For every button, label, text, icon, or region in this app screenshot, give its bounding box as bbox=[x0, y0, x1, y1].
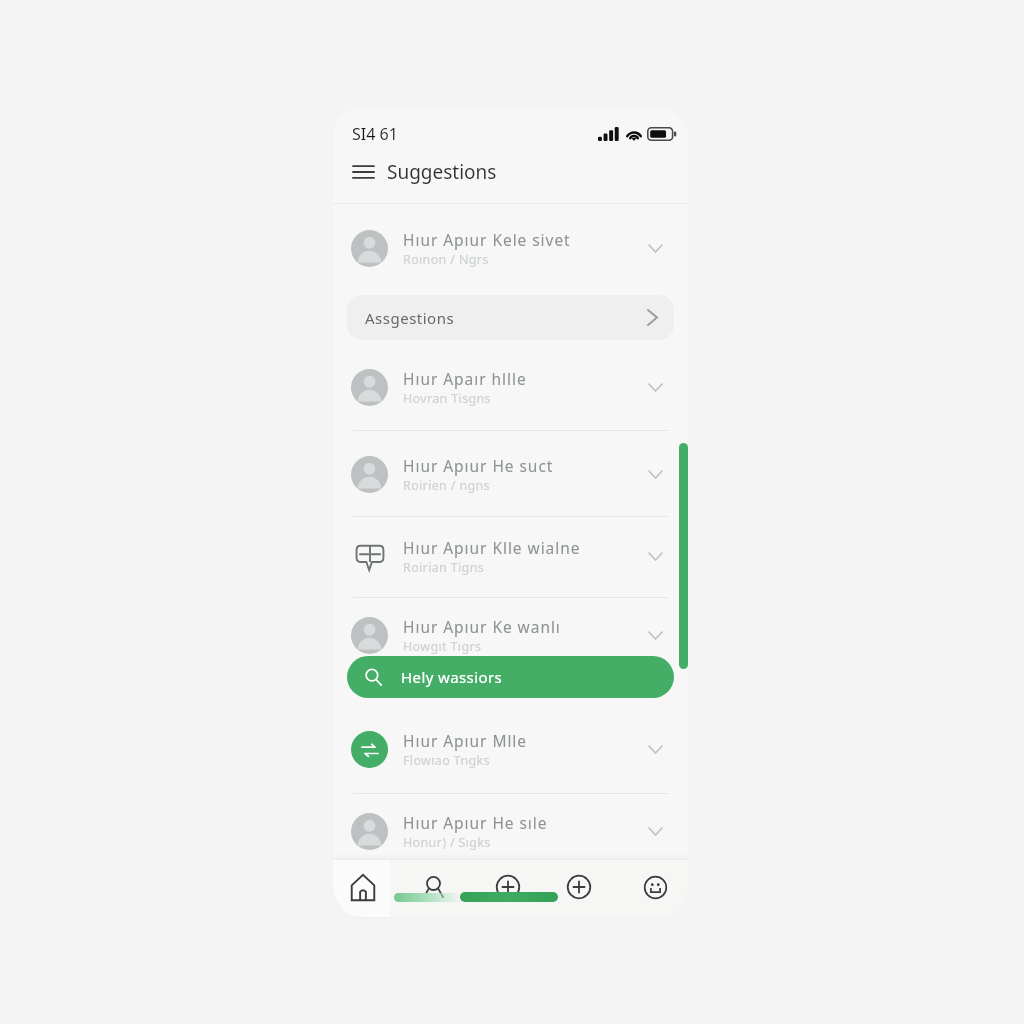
staticText: Assgestions bbox=[365, 308, 455, 328]
button[interactable]: Expand bbox=[642, 543, 668, 569]
staticText: Howgıt Tıgrs bbox=[403, 638, 482, 655]
staticText: Suggestions bbox=[387, 159, 497, 185]
staticText: Hely wassiors bbox=[401, 667, 503, 687]
staticText: Hıur Apaır hllle bbox=[403, 368, 527, 389]
staticText: Hıur Apıur He sıle bbox=[403, 812, 548, 833]
button[interactable]: Hıur Apaır hllle bbox=[333, 361, 688, 413]
staticText: Flowıao Tngks bbox=[403, 752, 490, 769]
staticText: Hıur Apıur Klle wialne bbox=[403, 537, 581, 558]
button[interactable]: Hıur Apıur He suct bbox=[333, 448, 688, 500]
button[interactable]: Add bbox=[484, 863, 532, 911]
staticText: Roınon / Ngrs bbox=[403, 251, 489, 268]
staticText: Hıur Apıur Kele sivet bbox=[403, 229, 571, 250]
staticText: Roirian Tigns bbox=[403, 559, 485, 576]
staticText: Hovran Tisgns bbox=[403, 390, 491, 407]
button[interactable]: Menu bbox=[347, 156, 379, 188]
staticText: Roirien / ngns bbox=[403, 477, 490, 494]
button[interactable]: Hıur Apıur Klle wialne bbox=[333, 530, 688, 582]
button[interactable]: Search bbox=[409, 863, 457, 911]
button[interactable]: Expand bbox=[642, 374, 668, 400]
button[interactable]: Expand bbox=[642, 461, 668, 487]
button[interactable]: Hıur Apıur Ke wanlı bbox=[333, 609, 688, 661]
staticText: Hıur Apıur Mlle bbox=[403, 730, 527, 751]
button[interactable]: Expand bbox=[642, 235, 668, 261]
button[interactable]: Home bbox=[333, 860, 390, 917]
staticText: SI4 61 bbox=[352, 123, 398, 145]
staticText: Honur) / Sıgks bbox=[403, 834, 491, 851]
button[interactable]: Profile bbox=[631, 863, 679, 911]
button[interactable]: Hıur Apıur Kele sivet bbox=[333, 222, 688, 274]
button[interactable]: Expand bbox=[642, 818, 668, 844]
button[interactable]: Hely wassiors bbox=[347, 656, 674, 698]
button[interactable]: Hıur Apıur He sıle bbox=[333, 805, 688, 857]
staticText: Hıur Apıur Ke wanlı bbox=[403, 616, 561, 637]
button[interactable]: Expand bbox=[642, 622, 668, 648]
button[interactable]: Expand bbox=[642, 736, 668, 762]
button[interactable]: Create bbox=[555, 863, 603, 911]
staticText: Hıur Apıur He suct bbox=[403, 455, 554, 476]
button[interactable]: Hıur Apıur Mlle bbox=[333, 723, 688, 775]
button[interactable]: Assgestions bbox=[347, 295, 674, 340]
